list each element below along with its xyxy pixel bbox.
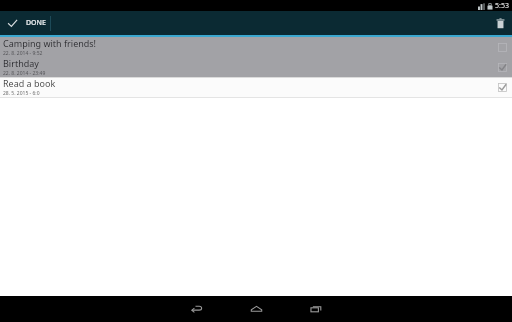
staticText: 28. 5. 2015 - 6:0 — [3, 90, 40, 97]
button[interactable]: Birthday — [0, 57, 512, 77]
button[interactable]: Delete — [488, 11, 512, 35]
staticText: 22. 8. 2014 - 23:49 — [3, 70, 46, 77]
button[interactable]: Back — [172, 296, 220, 322]
staticText: Camping with friends! — [3, 37, 97, 49]
button[interactable]: DONE — [0, 11, 58, 35]
staticText: 22. 8. 2014 - 9:52 — [3, 50, 43, 57]
button[interactable]: Checked, Read a book — [496, 81, 508, 93]
button[interactable]: Unchecked, Camping with friends! — [496, 41, 508, 53]
button[interactable]: Camping with friends! — [0, 37, 512, 57]
button[interactable]: Read a book — [0, 77, 512, 97]
staticText: DONE — [26, 18, 46, 28]
button[interactable]: Recents — [292, 296, 340, 322]
button[interactable]: Home — [232, 296, 280, 322]
staticText: Read a book — [3, 77, 56, 89]
staticText: 5:53 — [495, 1, 509, 11]
staticText: Birthday — [3, 57, 39, 69]
button[interactable]: Checked, Birthday — [496, 61, 508, 73]
